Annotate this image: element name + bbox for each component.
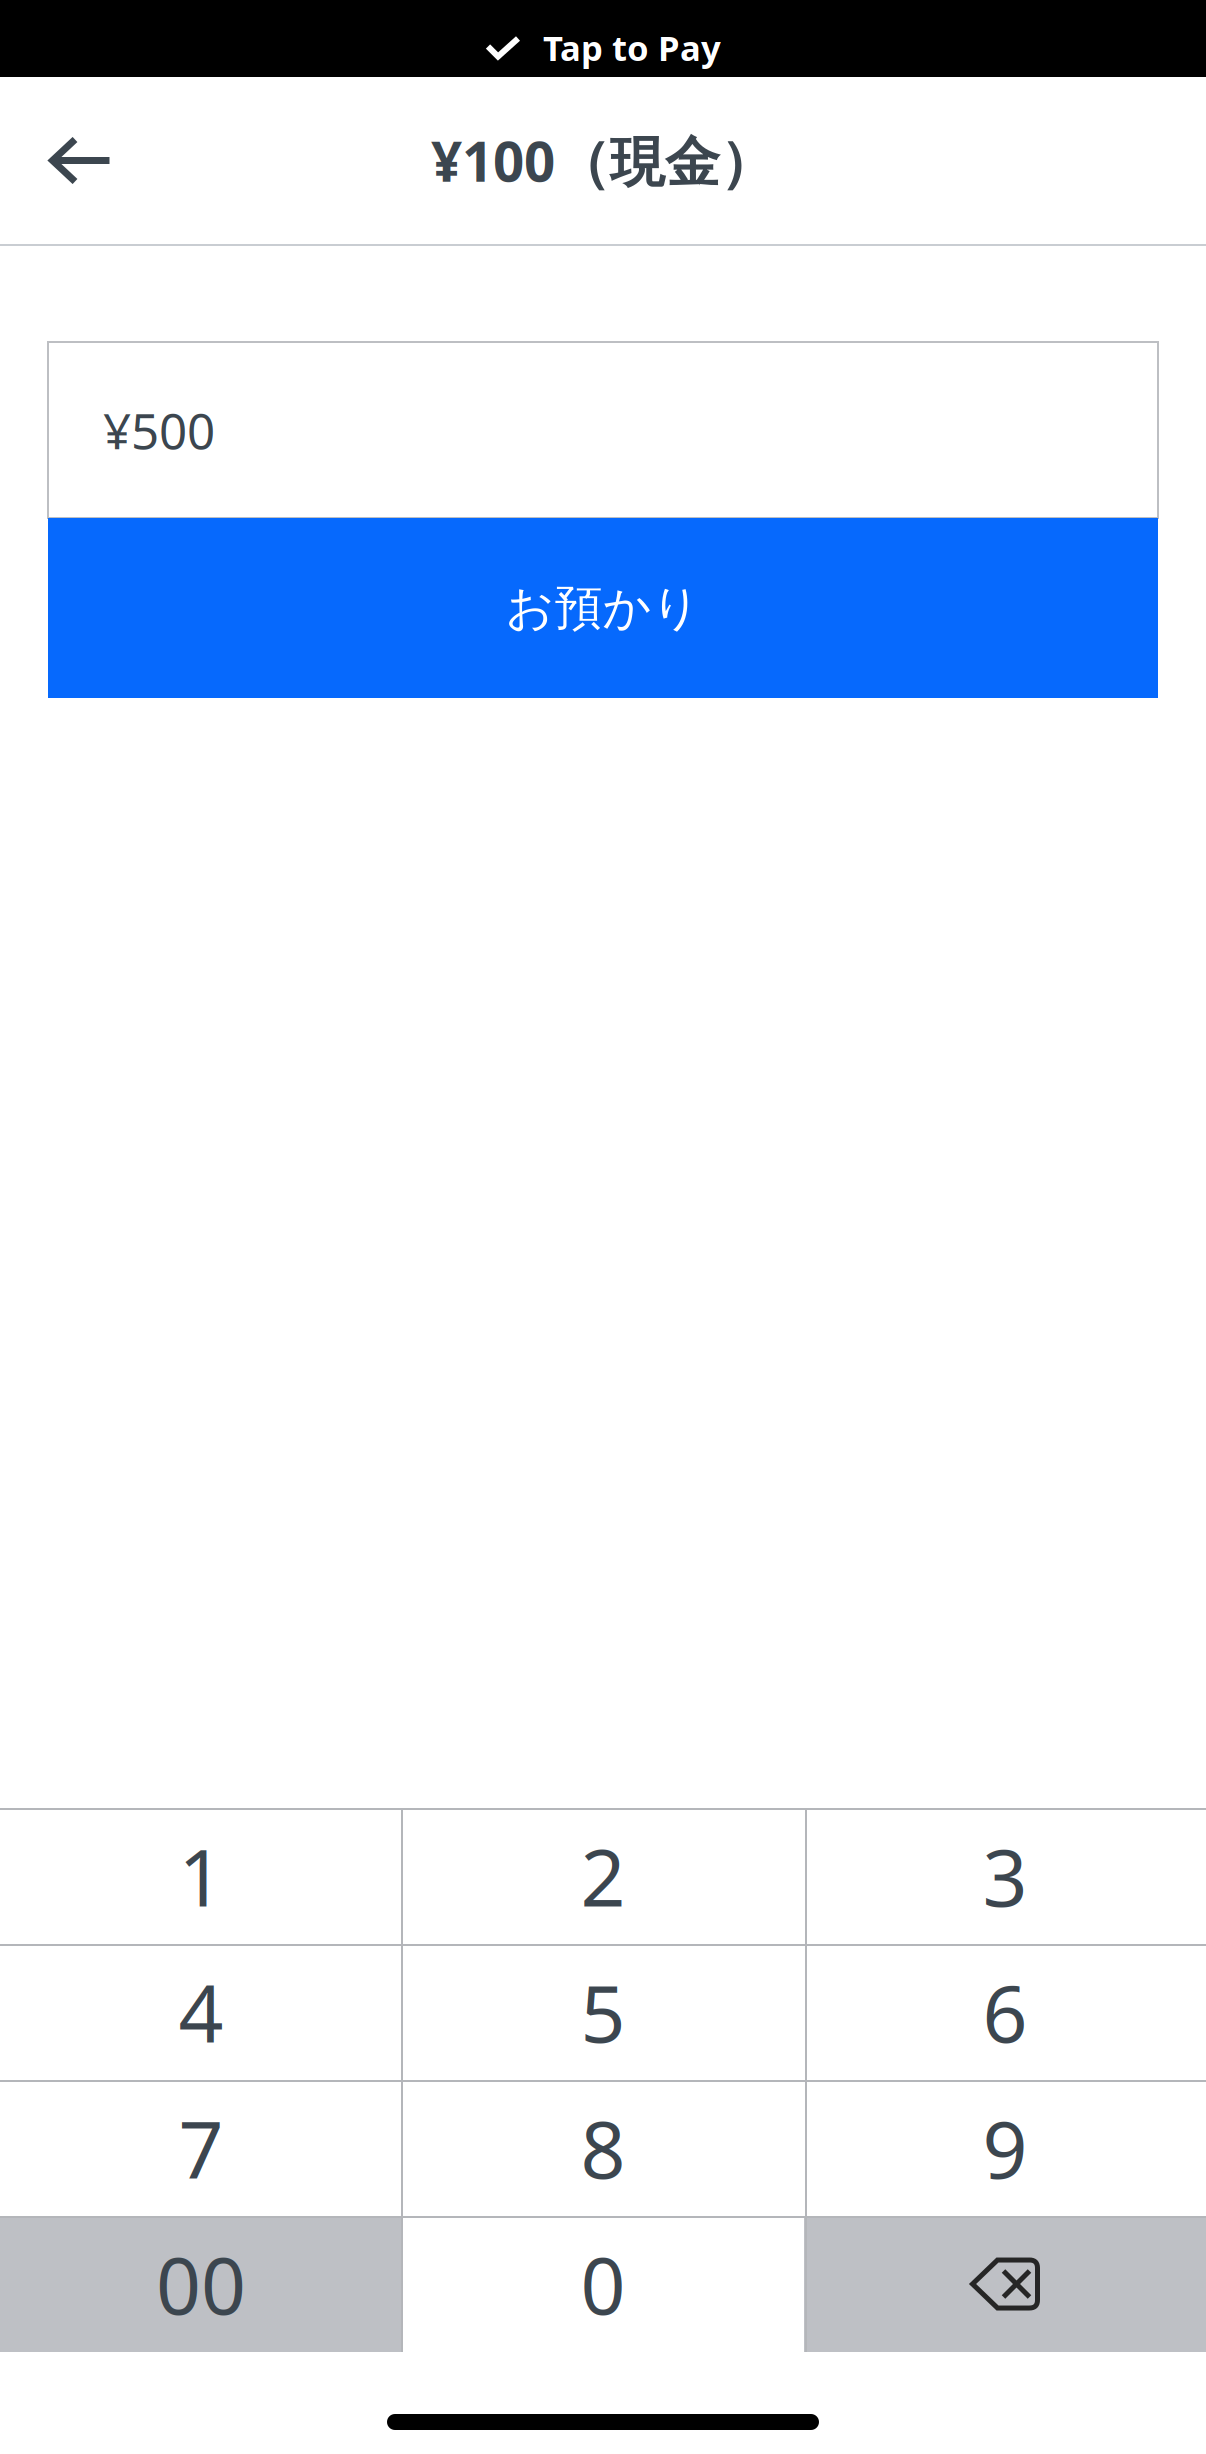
staticText: 0 xyxy=(580,2232,625,2336)
staticText: 4 xyxy=(178,1960,223,2064)
staticText: ¥500 xyxy=(103,397,215,463)
staticText: 1 xyxy=(178,1824,223,1928)
button[interactable]: Delete xyxy=(804,2216,1206,2352)
staticText: 7 xyxy=(178,2096,223,2200)
button[interactable]: 00 xyxy=(0,2216,402,2352)
button[interactable]: 2 xyxy=(402,1808,804,1944)
staticText: お預かり xyxy=(505,578,700,637)
button[interactable]: 8 xyxy=(402,2080,804,2216)
button[interactable]: 1 xyxy=(0,1808,402,1944)
staticText: 2 xyxy=(580,1824,625,1928)
staticText: 8 xyxy=(580,2096,625,2200)
button[interactable]: Back xyxy=(0,77,161,244)
button[interactable]: 4 xyxy=(0,1944,402,2080)
button[interactable]: ¥500 xyxy=(48,342,1158,518)
button[interactable]: 6 xyxy=(804,1944,1206,2080)
staticText: 3 xyxy=(982,1824,1027,1928)
staticText: ¥100（現金） xyxy=(431,124,775,197)
button[interactable]: お預かり xyxy=(48,518,1158,698)
staticText: 9 xyxy=(982,2096,1027,2200)
button[interactable]: 5 xyxy=(402,1944,804,2080)
button[interactable]: 7 xyxy=(0,2080,402,2216)
staticText: 6 xyxy=(982,1960,1027,2064)
button[interactable]: 3 xyxy=(804,1808,1206,1944)
button[interactable]: 9 xyxy=(804,2080,1206,2216)
button[interactable]: 0 xyxy=(402,2216,804,2352)
staticText: 5 xyxy=(580,1960,625,2064)
staticText: Tap to Pay xyxy=(543,24,721,70)
staticText: 00 xyxy=(156,2232,246,2336)
